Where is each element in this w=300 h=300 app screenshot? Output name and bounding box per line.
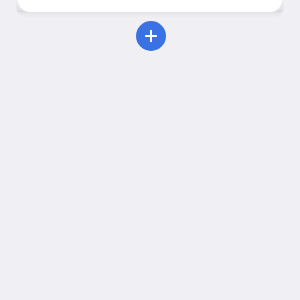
button[interactable] [18, 0, 282, 12]
button[interactable]: Add [136, 21, 166, 51]
